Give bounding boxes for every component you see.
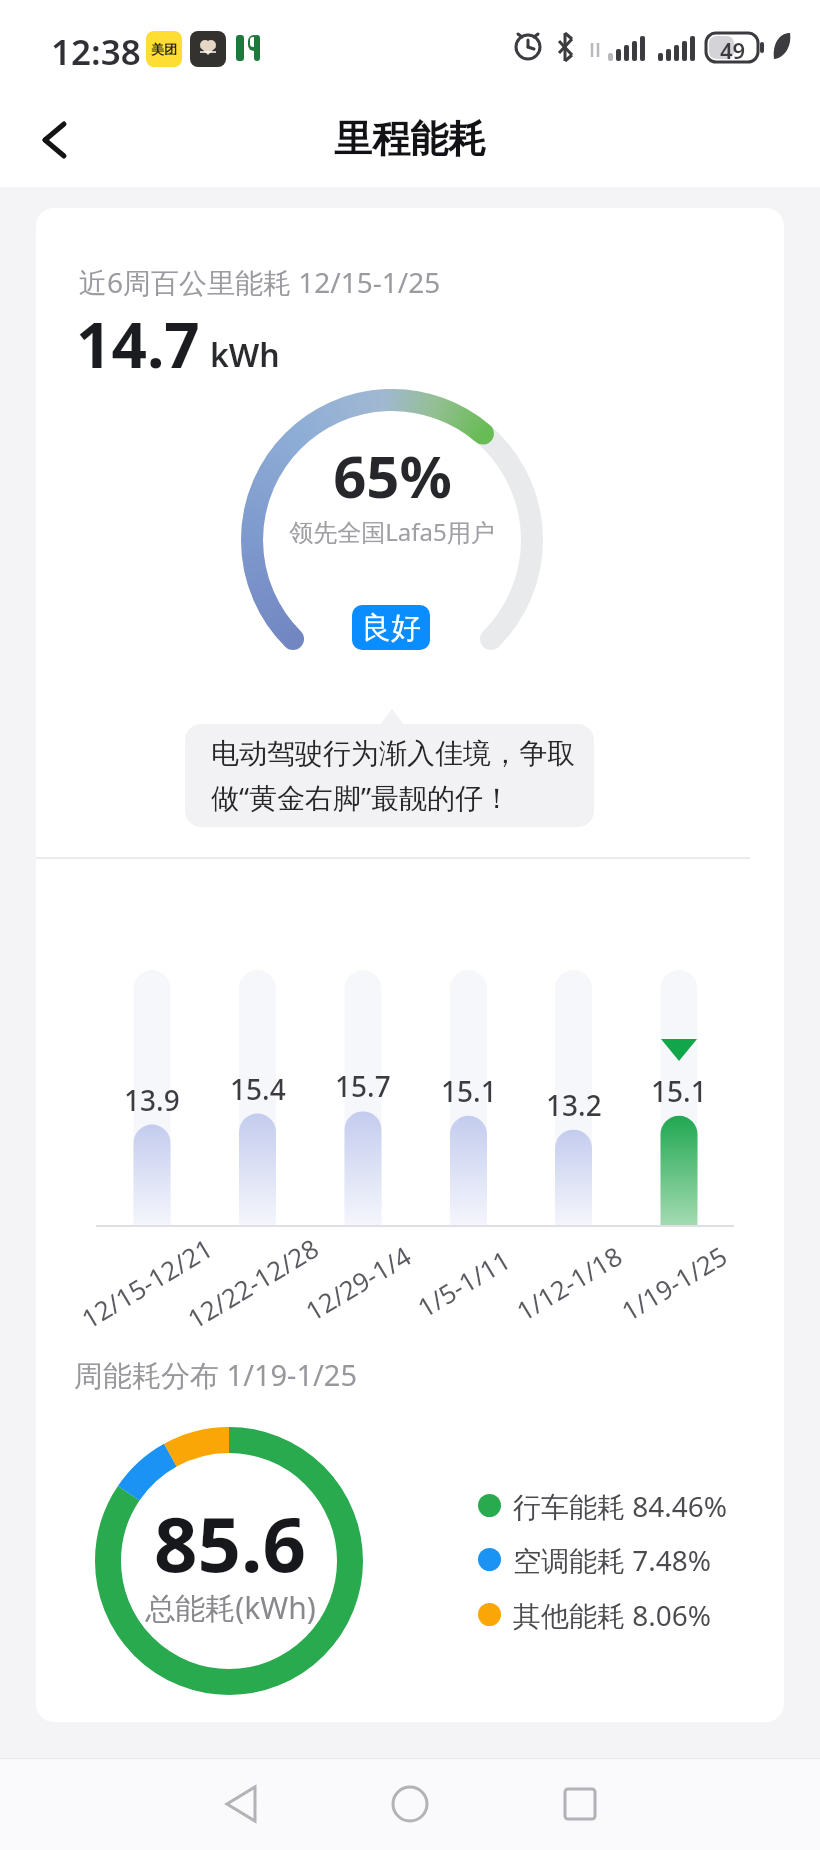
staticText: 1/12-1/18 [510, 1238, 625, 1324]
staticText: 其他能耗 8.06% [513, 1596, 712, 1632]
staticText: 15.4 [230, 1070, 286, 1108]
staticText: 15.1 [651, 1072, 707, 1110]
staticText: 65% [333, 436, 452, 515]
staticText: kWh [210, 333, 280, 377]
staticText: 49 [720, 35, 746, 65]
button[interactable] [274, 1758, 547, 1850]
staticText: 行车能耗 84.46% [513, 1487, 728, 1523]
staticText: 良好 [361, 609, 421, 647]
staticText: 13.9 [124, 1081, 180, 1119]
staticText: 电动驾驶行为渐入佳境，争取 做“黄金右脚”最靓的仔！ [211, 736, 575, 816]
staticText: 周能耗分布 1/19-1/25 [74, 1355, 357, 1395]
staticText: 空调能耗 7.48% [513, 1541, 712, 1577]
staticText: 13.2 [546, 1086, 602, 1124]
button[interactable] [0, 1758, 274, 1850]
staticText: 14.7 [76, 302, 200, 386]
staticText: 1/19-1/25 [615, 1238, 730, 1324]
staticText: 领先全国Lafa5用户 [289, 515, 495, 548]
staticText: 总能耗(kWh) [145, 1587, 316, 1628]
staticText: 12/22-12/28 [181, 1230, 322, 1331]
staticText: 美团 [151, 41, 177, 57]
staticText: 15.1 [441, 1072, 497, 1110]
staticText: 12:38 [51, 28, 141, 76]
staticText: 12/29-1/4 [299, 1238, 414, 1324]
button[interactable] [40, 122, 70, 158]
staticText: 里程能耗 [334, 115, 486, 163]
staticText: 85.6 [154, 1491, 306, 1595]
staticText: 近6周百公里能耗 12/15-1/25 [79, 263, 441, 301]
staticText: 1/5-1/11 [411, 1241, 514, 1320]
staticText: 12/15-12/21 [75, 1230, 216, 1331]
staticText: 15.7 [335, 1067, 391, 1105]
button[interactable]: 良好 [352, 605, 430, 650]
button[interactable] [547, 1758, 820, 1850]
